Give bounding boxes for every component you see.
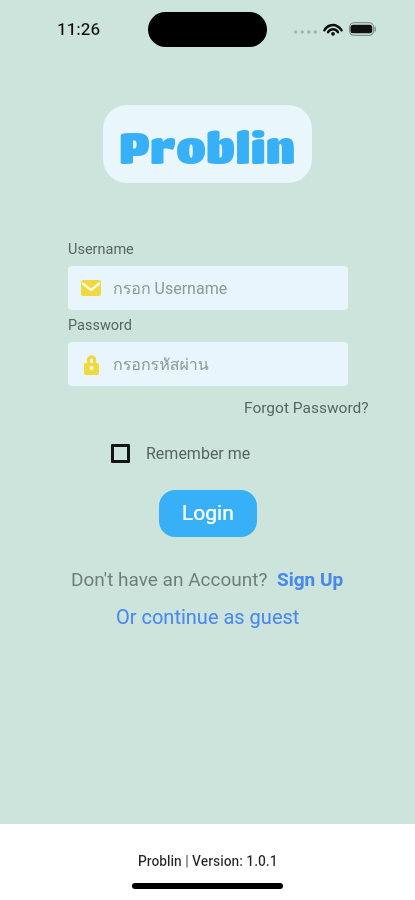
- button[interactable]: Sign Up: [277, 568, 344, 590]
- staticText: กรอกรหัสผ่าน: [113, 352, 209, 377]
- staticText: Or continue as guest: [116, 605, 300, 628]
- button[interactable]: Remember me: [111, 444, 251, 463]
- staticText: Problin: [119, 121, 296, 171]
- staticText: กรอก Username: [113, 276, 228, 301]
- staticText: Password: [68, 317, 133, 334]
- staticText: Remember me: [146, 444, 251, 463]
- staticText: Don't have an Account?: [71, 568, 268, 590]
- button[interactable]: Forgot Password?: [238, 396, 375, 420]
- button[interactable]: Problin logo: [103, 105, 312, 183]
- button[interactable]: กรอกรหัสผ่าน: [68, 342, 348, 386]
- button[interactable]: Login: [159, 490, 257, 537]
- staticText: Username: [68, 241, 134, 258]
- staticText: Login: [182, 501, 234, 526]
- staticText: Forgot Password?: [244, 399, 369, 417]
- button[interactable]: กรอก Username: [68, 266, 348, 310]
- button[interactable]: Or continue as guest: [116, 605, 300, 628]
- staticText: Problin | Version: 1.0.1: [138, 853, 278, 869]
- staticText: 11:26: [57, 19, 101, 39]
- staticText: Sign Up: [277, 568, 344, 590]
